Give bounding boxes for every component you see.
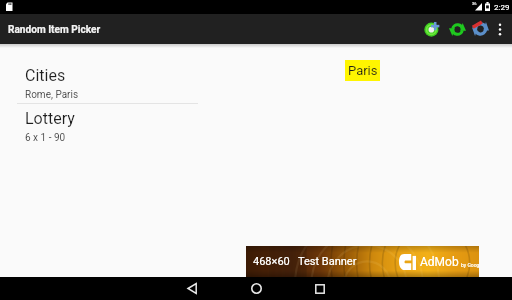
button[interactable]: Advertisement (246, 246, 479, 277)
button[interactable]: Shuffle (445, 14, 469, 44)
button[interactable]: Home (240, 277, 272, 300)
button[interactable]: Paris (345, 60, 380, 81)
staticText: Lottery (25, 109, 75, 128)
staticText: Rome, Paris (25, 89, 79, 101)
staticText: Random Item Picker (8, 24, 101, 36)
staticText: Test Banner (298, 255, 357, 268)
staticText: 6 x 1 - 90 (25, 132, 66, 144)
button[interactable]: Reset (468, 14, 492, 44)
staticText: 36 (472, 1, 477, 6)
staticText: 468×60 (253, 255, 290, 268)
staticText: by Google (461, 262, 479, 268)
button[interactable]: Recent apps (304, 277, 336, 300)
button[interactable]: Cities (0, 66, 198, 104)
button[interactable]: Add item (420, 14, 444, 44)
staticText: Cities (25, 66, 66, 85)
staticText: AdMob (420, 255, 459, 269)
button[interactable]: Back (176, 277, 208, 300)
button[interactable]: Lottery (0, 109, 198, 148)
staticText: Paris (348, 63, 378, 78)
button[interactable]: More options (490, 14, 510, 44)
staticText: 2:29 (494, 3, 510, 12)
